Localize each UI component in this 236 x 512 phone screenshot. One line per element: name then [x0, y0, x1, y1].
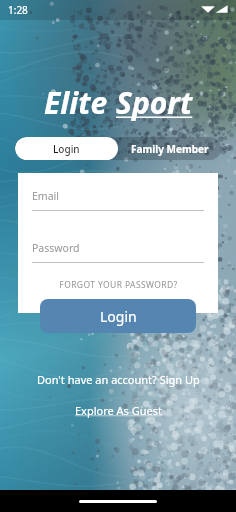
staticText: Sport	[116, 82, 193, 123]
button[interactable]: Don't have an account? Sign Up	[37, 372, 200, 387]
button[interactable]: Login	[40, 299, 196, 333]
staticText: Login	[53, 142, 80, 156]
staticText: Family Member	[131, 142, 209, 156]
staticText: Elite	[44, 82, 116, 123]
staticText: FORGOT YOUR PASSWORD?	[59, 279, 178, 291]
staticText: 1:28	[8, 3, 28, 17]
button[interactable]: Explore As Guest	[69, 401, 168, 420]
staticText: Login	[100, 307, 137, 326]
staticText: Email	[32, 189, 59, 203]
button[interactable]: FORGOT YOUR PASSWORD?	[32, 279, 204, 291]
button[interactable]: Password	[32, 241, 204, 263]
button[interactable]: Email	[32, 189, 204, 211]
button[interactable]: Family Member	[118, 137, 221, 160]
button[interactable]: Login	[15, 137, 118, 160]
staticText: Explore As Guest	[75, 403, 162, 418]
staticText: Don't have an account? Sign Up	[37, 372, 200, 387]
staticText: Password	[32, 241, 80, 255]
